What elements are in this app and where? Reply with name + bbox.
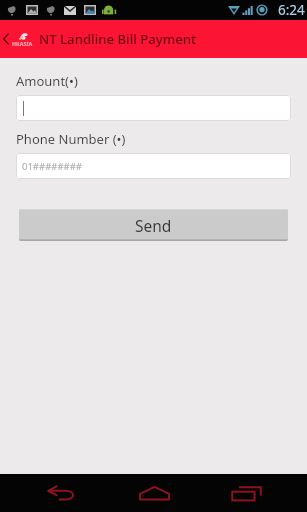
button[interactable]: Navigate up	[0, 20, 39, 58]
staticText: HKASIA	[12, 40, 33, 47]
staticText: 01########	[22, 160, 82, 173]
staticText: NT Landline Bill Payment	[39, 30, 197, 48]
button[interactable]: Recent apps	[214, 474, 278, 512]
staticText: Send	[135, 215, 172, 236]
staticText: 6:24	[278, 1, 305, 19]
button[interactable]	[16, 95, 291, 121]
button[interactable]: Back	[29, 474, 93, 512]
button[interactable]: 01########	[16, 153, 291, 179]
button[interactable]: Send	[19, 209, 288, 241]
button[interactable]: Home	[122, 474, 186, 512]
staticText: Amount(•)	[16, 72, 78, 90]
staticText: Phone Number (•)	[16, 130, 126, 148]
